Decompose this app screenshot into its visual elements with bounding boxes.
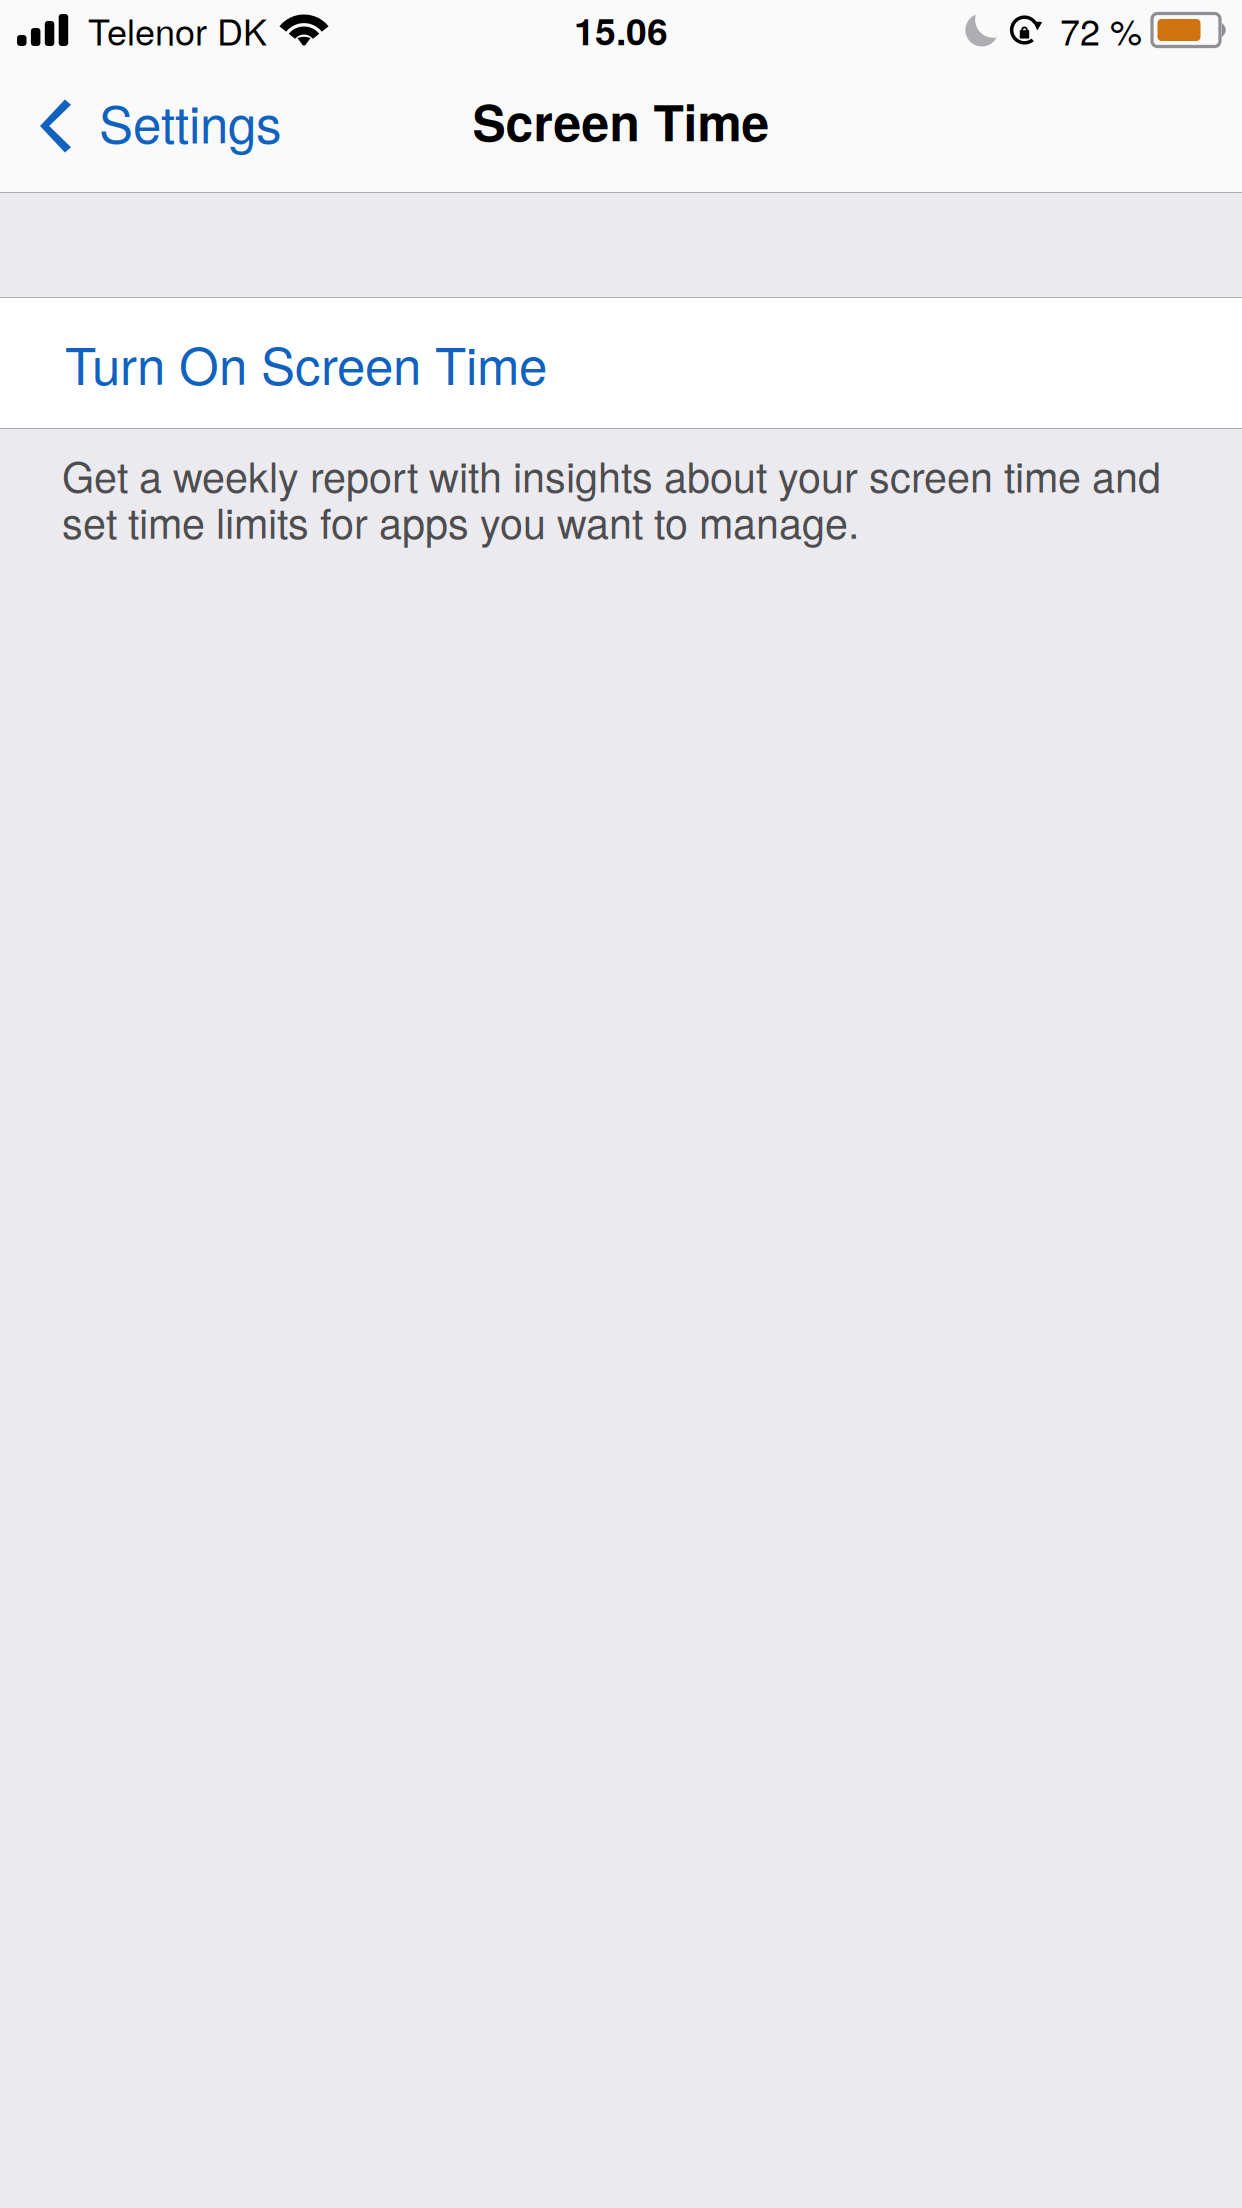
staticText: 72 % bbox=[1060, 4, 1142, 56]
staticText: Screen Time bbox=[472, 85, 769, 157]
staticText: Turn On Screen Time bbox=[65, 326, 547, 399]
button[interactable]: Settings bbox=[0, 70, 306, 182]
staticText: Telenor DK bbox=[88, 4, 267, 56]
staticText: Get a weekly report with insights about … bbox=[62, 445, 1161, 550]
staticText: 15.06 bbox=[574, 3, 668, 57]
button[interactable]: Turn On Screen Time bbox=[0, 298, 1242, 428]
staticText: Settings bbox=[99, 85, 282, 158]
